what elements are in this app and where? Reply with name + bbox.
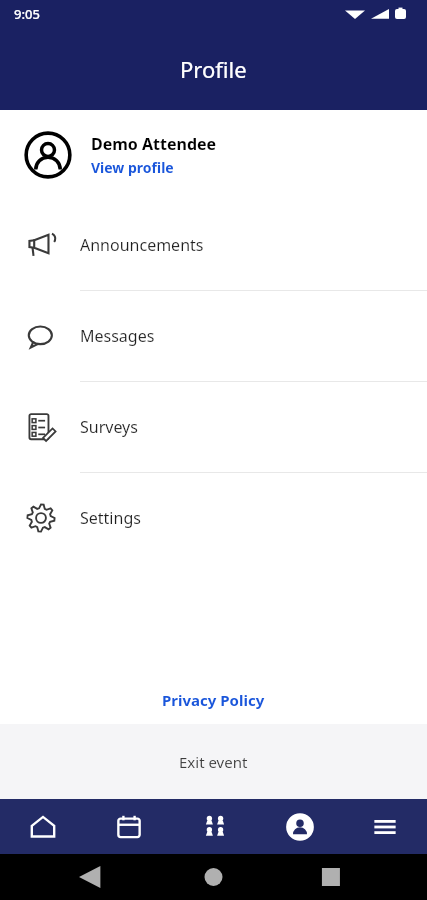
button[interactable]: Settings bbox=[0, 473, 427, 563]
staticText: Exit event bbox=[179, 752, 248, 772]
staticText: 9:05 bbox=[14, 5, 40, 23]
staticText: Demo Attendee bbox=[91, 133, 217, 155]
staticText: Profile bbox=[180, 54, 247, 84]
button[interactable]: Home bbox=[0, 799, 86, 854]
button[interactable]: Schedule bbox=[86, 799, 172, 854]
button[interactable]: Surveys bbox=[0, 382, 427, 472]
button[interactable]: Privacy Policy bbox=[0, 676, 427, 724]
button[interactable]: Messages bbox=[0, 291, 427, 381]
staticText: Privacy Policy bbox=[162, 690, 265, 710]
button[interactable]: Demo Attendee bbox=[0, 110, 427, 200]
button[interactable]: Exit event bbox=[0, 724, 427, 799]
staticText: Messages bbox=[80, 325, 155, 347]
staticText: Surveys bbox=[80, 416, 138, 438]
button[interactable]: Menu bbox=[342, 799, 427, 854]
button[interactable]: Announcements bbox=[0, 200, 427, 290]
staticText: Announcements bbox=[80, 234, 204, 256]
button[interactable]: Attendees bbox=[172, 799, 257, 854]
staticText: Settings bbox=[80, 507, 141, 529]
staticText: View profile bbox=[91, 158, 174, 177]
button[interactable]: Profile bbox=[257, 799, 342, 854]
